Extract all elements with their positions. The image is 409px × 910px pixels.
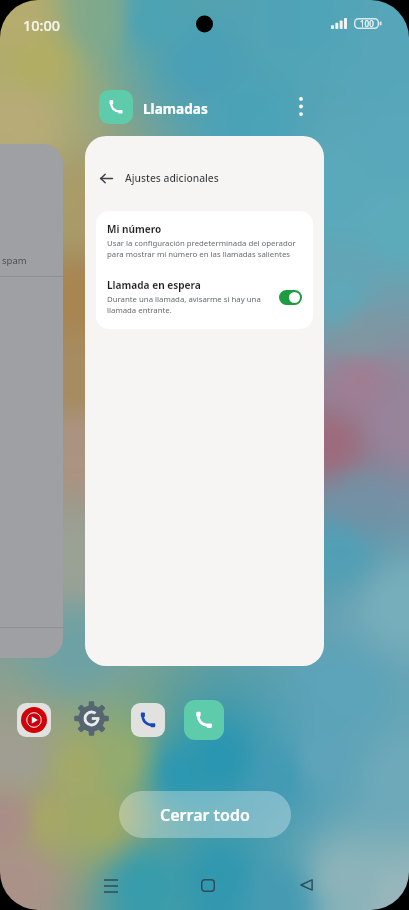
staticText: 10:00 — [23, 15, 61, 35]
button[interactable]: Teléfono — [131, 703, 165, 737]
button[interactable]: Más opciones — [287, 92, 315, 120]
staticText: Mi número — [107, 222, 162, 236]
staticText: 100 — [360, 18, 374, 29]
staticText: Ajustes adicionales — [125, 171, 219, 185]
staticText: Durante una llamada, avisarme si hay una… — [107, 294, 272, 316]
button[interactable]: YouTube Music — [17, 703, 51, 737]
button[interactable]: Inicio — [186, 863, 230, 907]
staticText: Usar la configuración predeterminada del… — [107, 238, 302, 260]
button[interactable]: Atrás — [284, 863, 328, 907]
button[interactable]: Recientes — [89, 863, 133, 907]
staticText: spam — [2, 254, 27, 267]
button[interactable]: Llamadas — [99, 90, 133, 124]
button[interactable]: Mi número — [96, 211, 313, 269]
button[interactable]: Llamada en espera — [279, 290, 302, 305]
button[interactable]: Ajustes de Google — [71, 698, 111, 738]
button[interactable]: Atrás — [100, 172, 113, 185]
button[interactable]: Llamadas — [184, 700, 224, 740]
staticText: Cerrar todo — [160, 804, 250, 826]
button[interactable]: Cerrar todo — [119, 791, 291, 838]
staticText: Llamada en espera — [107, 278, 201, 292]
button[interactable]: Llamada en espera — [96, 269, 313, 329]
staticText: Llamadas — [143, 99, 208, 118]
